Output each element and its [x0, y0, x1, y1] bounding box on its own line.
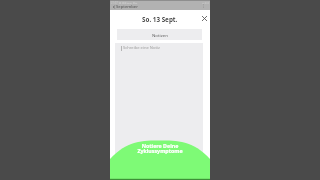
staticText: September: [116, 4, 139, 10]
button[interactable]: Close: [199, 13, 209, 23]
staticText: Notizen: [152, 32, 168, 38]
staticText: Notiere Deine Zyklussymptome: [137, 142, 183, 155]
button[interactable]: Schreibe eine Notiz: [115, 43, 203, 163]
staticText: So. 13 Sept.: [142, 15, 178, 24]
button[interactable]: September: [110, 4, 210, 10]
staticText: Schreibe eine Notiz: [123, 45, 160, 51]
button[interactable]: More options: [201, 3, 206, 8]
button[interactable]: Notizen: [117, 29, 202, 40]
staticText: ▬● ▮: [202, 1, 209, 4]
button[interactable]: Notiere Deine Zyklussymptome: [110, 142, 210, 158]
staticText: 21:07 ● ●● ▬▬ ●▬: [111, 1, 138, 4]
